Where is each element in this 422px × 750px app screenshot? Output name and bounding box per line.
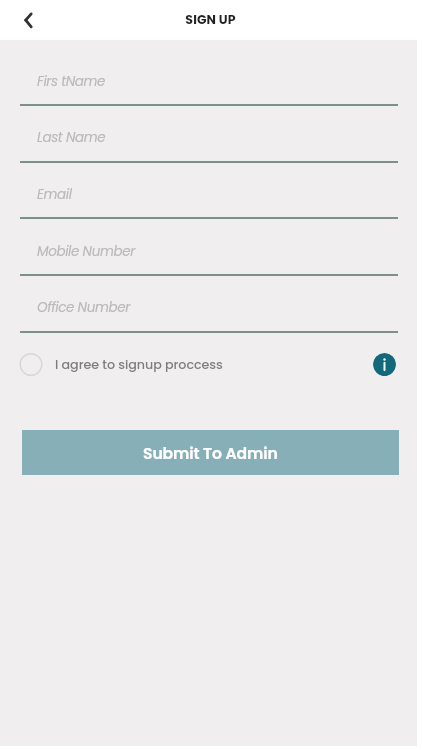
button[interactable]: Information — [373, 353, 396, 376]
button[interactable]: Submit To Admin — [22, 430, 399, 475]
staticText: SIGN UP — [185, 11, 236, 28]
button[interactable]: I agree to signup proccess — [19, 353, 223, 376]
staticText: Submit To Admin — [143, 443, 278, 465]
staticText: Office Number — [37, 298, 130, 317]
staticText: Email — [37, 185, 72, 204]
button[interactable]: Back — [12, 4, 44, 36]
staticText: Mobile Number — [37, 242, 135, 261]
staticText: Last Name — [37, 128, 106, 147]
staticText: I agree to signup proccess — [55, 356, 223, 374]
staticText: Firs tName — [37, 72, 106, 91]
